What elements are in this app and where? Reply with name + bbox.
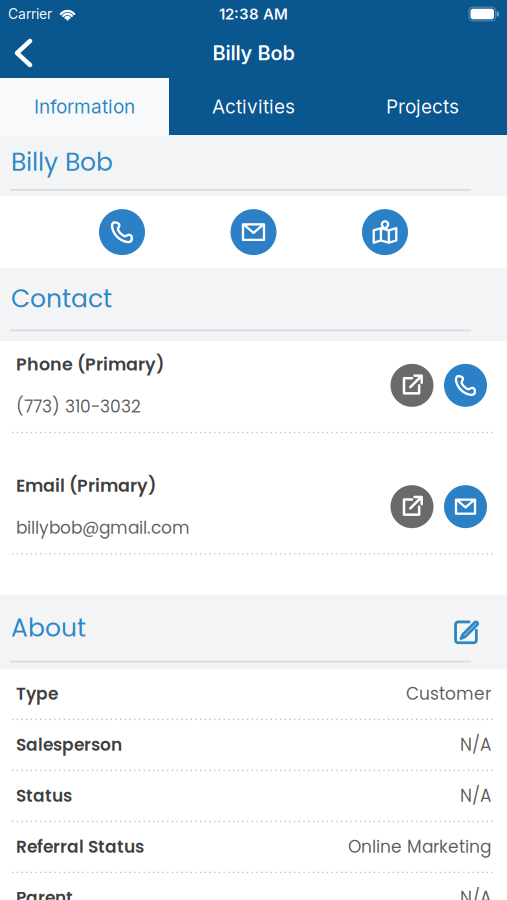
button[interactable]: Back bbox=[0, 28, 50, 78]
staticText: Status bbox=[16, 784, 72, 808]
staticText: Parent bbox=[16, 886, 73, 900]
button[interactable]: Projects bbox=[338, 78, 507, 135]
staticText: Contact bbox=[11, 281, 112, 316]
staticText: Online Marketing bbox=[348, 835, 491, 859]
staticText: Activities bbox=[212, 95, 295, 118]
button[interactable]: Information bbox=[0, 78, 169, 135]
staticText: Projects bbox=[386, 95, 459, 118]
staticText: Phone (Primary) bbox=[16, 352, 164, 377]
staticText: Customer bbox=[406, 682, 491, 706]
staticText: Carrier bbox=[8, 5, 52, 22]
staticText: Referral Status bbox=[16, 835, 144, 859]
staticText: Billy Bob bbox=[212, 41, 294, 65]
button[interactable]: Call bbox=[444, 364, 487, 407]
staticText: Type bbox=[16, 682, 58, 706]
staticText: N/A bbox=[460, 886, 491, 900]
staticText: About bbox=[11, 610, 86, 645]
button[interactable]: Call bbox=[99, 209, 145, 255]
staticText: Billy Bob bbox=[11, 144, 113, 179]
button[interactable]: Edit bbox=[454, 611, 507, 644]
staticText: N/A bbox=[460, 784, 491, 808]
staticText: billybob@gmail.com bbox=[16, 516, 190, 540]
button[interactable]: Activities bbox=[169, 78, 338, 135]
staticText: Email (Primary) bbox=[16, 473, 156, 498]
staticText: (773) 310-3032 bbox=[16, 395, 141, 418]
button[interactable]: Email bbox=[230, 209, 276, 255]
staticText: 12:38 AM bbox=[219, 5, 288, 23]
staticText: Information bbox=[34, 95, 135, 118]
button[interactable]: Open Phone (Primary) bbox=[390, 364, 433, 407]
button[interactable]: Open Email (Primary) bbox=[390, 485, 433, 528]
button[interactable]: Send email bbox=[444, 485, 487, 528]
button[interactable]: Map bbox=[362, 209, 408, 255]
staticText: N/A bbox=[460, 733, 491, 757]
staticText: Salesperson bbox=[16, 733, 122, 757]
